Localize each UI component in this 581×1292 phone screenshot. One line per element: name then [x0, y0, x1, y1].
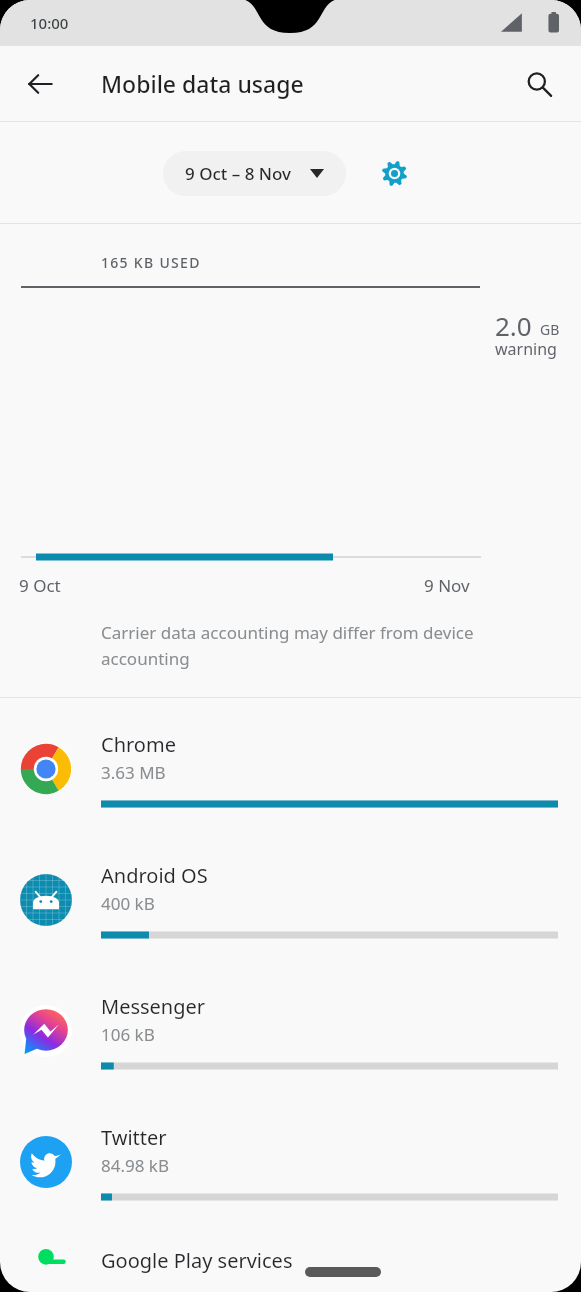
staticText: warning — [495, 338, 557, 360]
button[interactable]: 9 Oct – 8 Nov — [163, 151, 346, 196]
staticText: Carrier data accounting may differ from … — [101, 621, 474, 670]
button[interactable]: Android OS — [0, 829, 581, 960]
button[interactable]: Data warning and limit settings — [370, 149, 418, 197]
button[interactable]: Messenger — [0, 960, 581, 1091]
staticText: 165 KB USED — [101, 253, 201, 272]
staticText: 400 kB — [101, 892, 155, 915]
staticText: Messenger — [101, 993, 206, 1020]
staticText: 106 kB — [101, 1023, 155, 1046]
staticText: 2.0 — [495, 308, 532, 343]
staticText: Mobile data usage — [101, 68, 304, 99]
staticText: 9 Nov — [424, 574, 470, 597]
staticText: Google Play services — [101, 1247, 293, 1274]
staticText: 9 Oct – 8 Nov — [185, 162, 292, 185]
staticText: Chrome — [101, 731, 176, 758]
button[interactable]: Search — [511, 56, 567, 112]
button[interactable]: Back — [12, 56, 68, 112]
staticText: 9 Oct — [19, 574, 61, 597]
button[interactable]: Chrome — [0, 698, 581, 829]
staticText: Twitter — [101, 1124, 167, 1151]
staticText: 10:00 — [30, 13, 69, 33]
button[interactable]: Twitter — [0, 1091, 581, 1222]
button[interactable]: Google Play services — [0, 1222, 581, 1284]
staticText: 84.98 kB — [101, 1154, 169, 1177]
staticText: Android OS — [101, 862, 208, 889]
staticText: GB — [540, 320, 560, 339]
staticText: 3.63 MB — [101, 761, 166, 784]
